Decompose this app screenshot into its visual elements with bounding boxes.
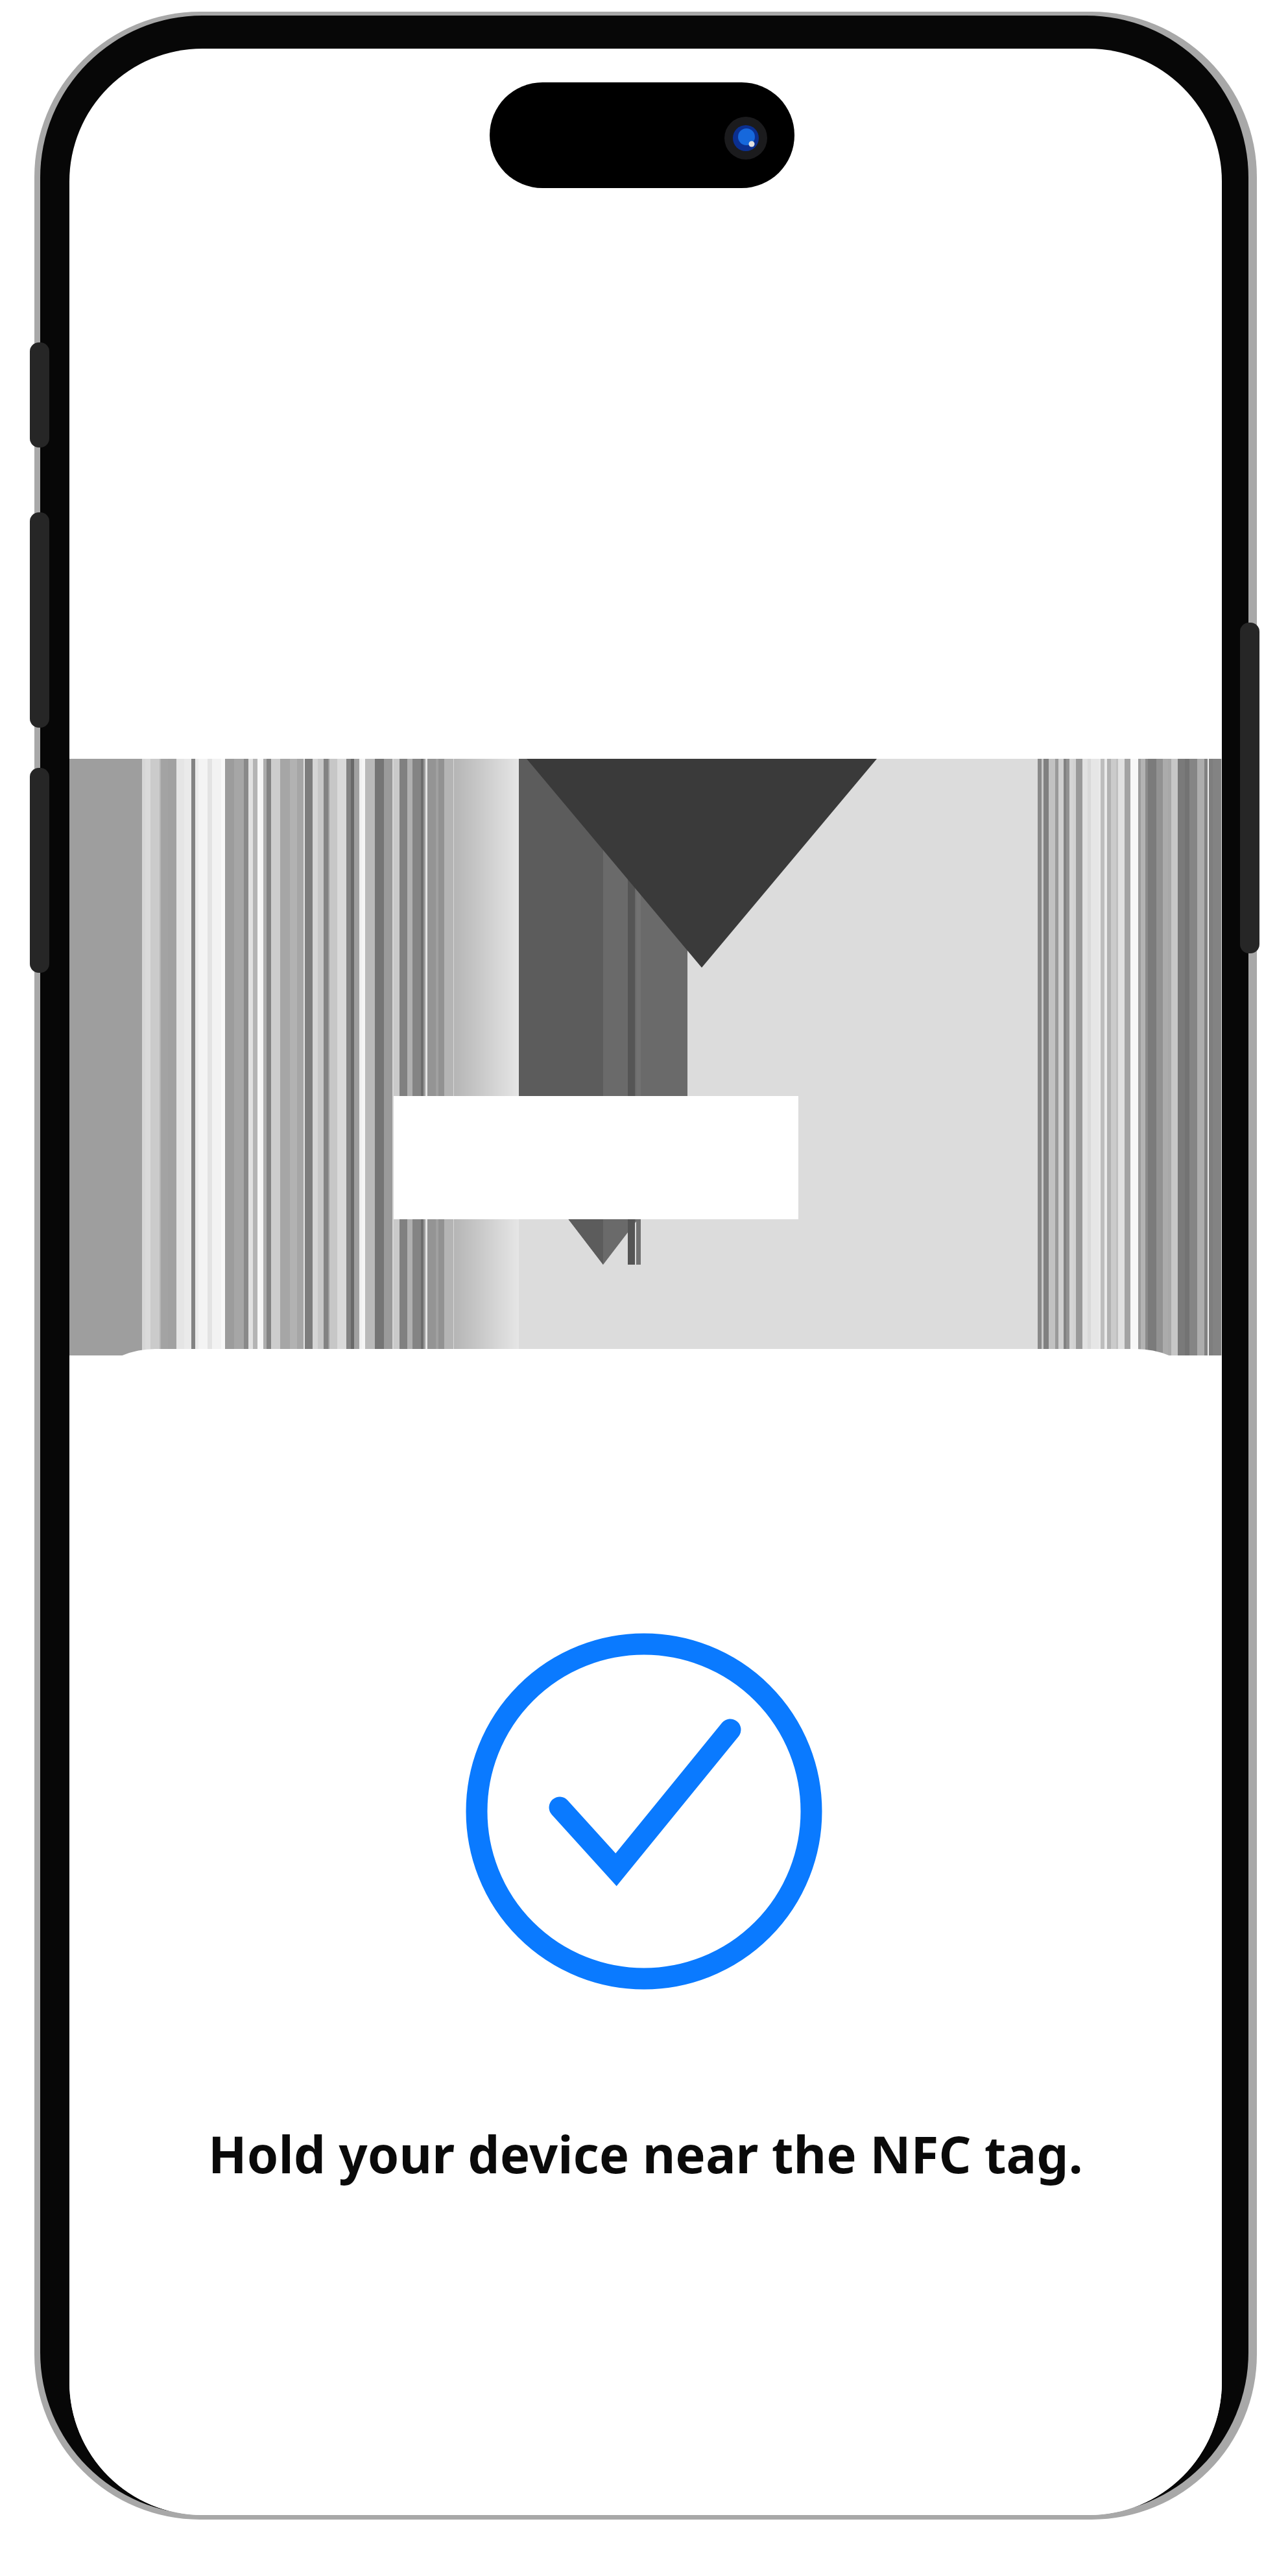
button[interactable]: NFC scan sheet [69, 1349, 1222, 2515]
